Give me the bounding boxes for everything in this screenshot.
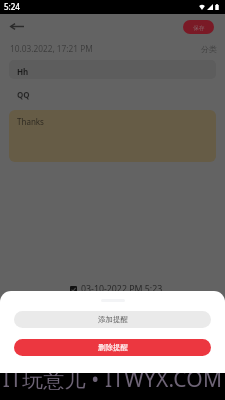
staticText: 03-10-2022 PM 5:23 <box>81 283 163 295</box>
staticText: QQ <box>17 89 30 100</box>
staticText: 删除提醒 <box>98 343 128 352</box>
button[interactable]: Hh <box>9 60 216 79</box>
button[interactable]: 删除提醒 <box>14 339 211 356</box>
staticText: IT玩意儿 • ITWYX.COM <box>0 365 225 394</box>
staticText: Hh <box>17 66 29 77</box>
button[interactable]: QQ <box>17 89 30 100</box>
staticText: 保存 <box>193 24 205 31</box>
button[interactable]: Back <box>5 17 28 35</box>
staticText: Thanks <box>17 116 44 127</box>
button[interactable]: 保存 <box>183 20 214 34</box>
staticText: 10.03.2022, 17:21 PM <box>10 43 93 54</box>
staticText: 5:24 <box>4 1 20 12</box>
button[interactable]: 03-10-2022 PM 5:23 <box>70 283 163 295</box>
button[interactable]: 分类 <box>201 44 217 54</box>
staticText: 分类 <box>201 44 217 54</box>
button[interactable]: 添加提醒 <box>14 311 211 328</box>
staticText: 添加提醒 <box>98 315 128 324</box>
